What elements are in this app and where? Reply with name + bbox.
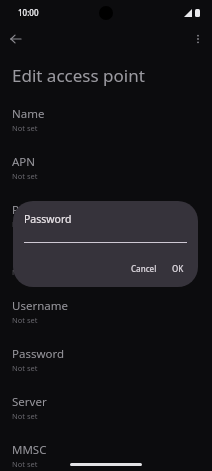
staticText: Proxy <box>12 202 43 218</box>
button[interactable]: Port <box>0 229 212 277</box>
staticText: Password <box>12 346 65 362</box>
staticText: MMSC <box>12 442 47 458</box>
button[interactable]: More options <box>187 28 209 50</box>
button[interactable]: Server <box>0 373 212 421</box>
staticText: Not set <box>12 171 38 181</box>
staticText: Not set <box>12 267 38 277</box>
button[interactable]: MMSC <box>0 421 212 469</box>
button[interactable]: Name <box>0 98 212 133</box>
button[interactable]: APN <box>0 133 212 181</box>
button[interactable]: Username <box>0 277 212 325</box>
staticText: Name <box>12 106 45 122</box>
staticText: Not set <box>12 459 38 469</box>
staticText: Username <box>12 298 68 314</box>
staticText: Not set <box>12 411 38 421</box>
button[interactable]: OK <box>168 260 188 277</box>
staticText: 10:00 <box>18 7 39 18</box>
staticText: APN <box>12 154 36 170</box>
button[interactable]: Proxy <box>0 181 212 229</box>
button[interactable]: Password <box>0 325 212 373</box>
staticText: Not set <box>12 363 38 373</box>
button[interactable]: Back <box>5 28 27 50</box>
staticText: Edit access point <box>12 64 145 87</box>
staticText: Not set <box>12 123 38 133</box>
staticText: Not set <box>12 219 38 229</box>
staticText: Port <box>12 250 35 266</box>
staticText: Password <box>24 212 72 226</box>
staticText: Server <box>12 394 47 410</box>
staticText: Cancel <box>131 263 157 274</box>
staticText: OK <box>172 263 184 274</box>
button[interactable]: Cancel <box>127 260 161 277</box>
staticText: Not set <box>12 315 38 325</box>
